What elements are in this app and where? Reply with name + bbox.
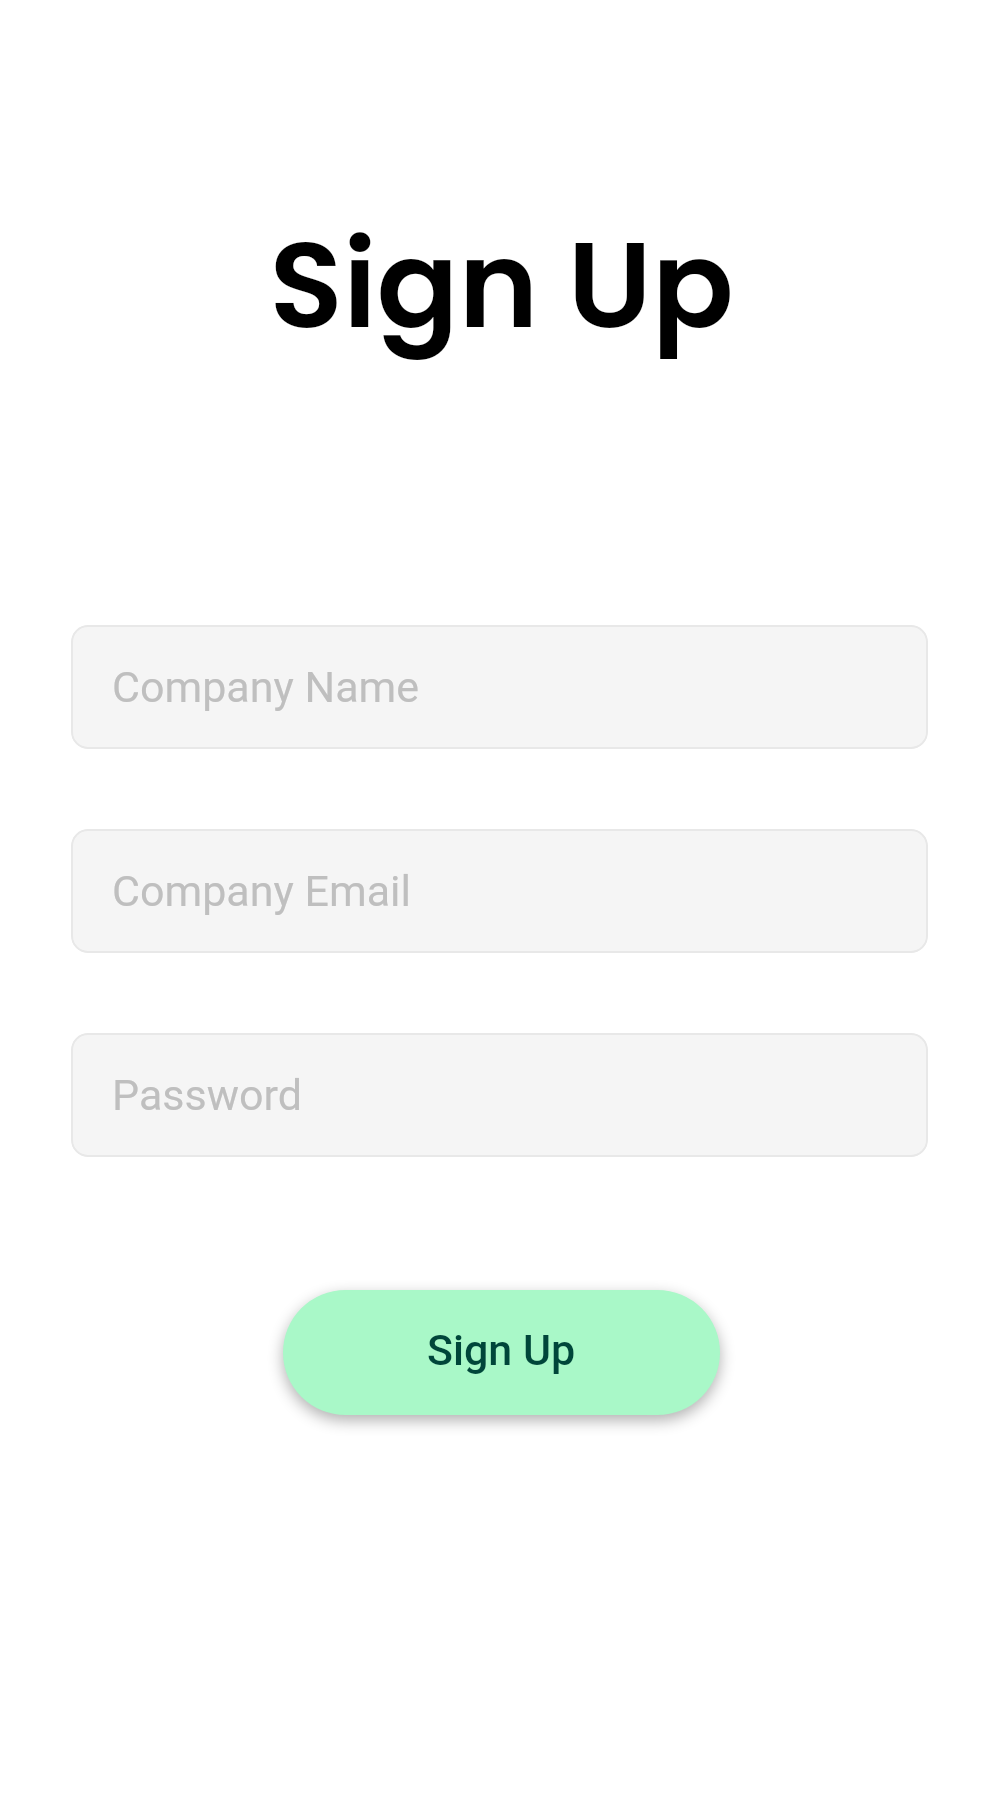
staticText: Company Name (112, 662, 420, 712)
button[interactable]: Password (71, 1033, 928, 1157)
button[interactable]: Company Email (71, 829, 928, 953)
staticText: Sign Up (427, 1325, 576, 1375)
staticText: Sign Up (269, 200, 734, 369)
staticText: Password (112, 1070, 302, 1120)
staticText: Company Email (112, 866, 411, 916)
button[interactable]: Company Name (71, 625, 928, 749)
button[interactable]: Sign Up (283, 1290, 720, 1415)
